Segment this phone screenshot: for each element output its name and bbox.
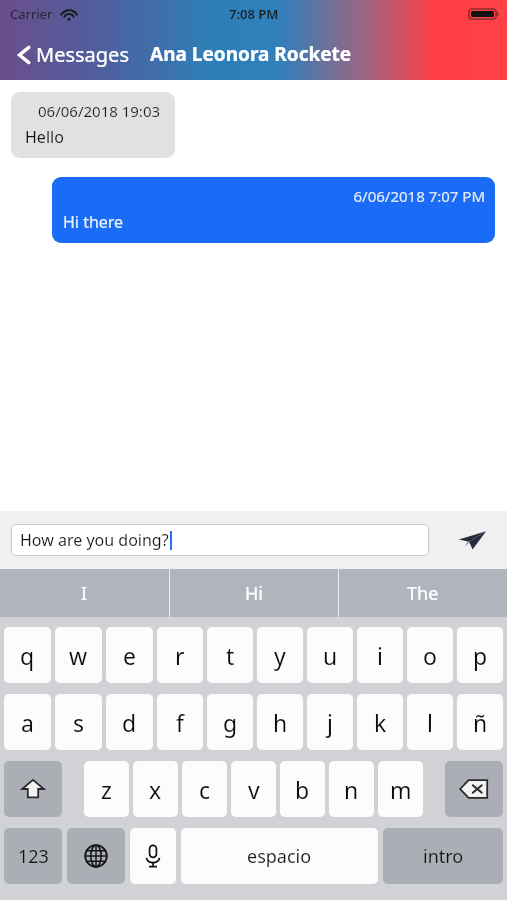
button[interactable]: i	[357, 627, 403, 683]
staticText: e	[123, 640, 136, 671]
button[interactable]: e	[106, 627, 153, 683]
staticText: q	[20, 640, 35, 671]
staticText: Hi there	[63, 211, 124, 233]
staticText: o	[423, 640, 437, 671]
button[interactable]: g	[207, 694, 253, 750]
button[interactable]: a	[4, 694, 51, 750]
button[interactable]: z	[84, 761, 129, 817]
button[interactable]: Shift	[4, 761, 62, 817]
button[interactable]: d	[106, 694, 153, 750]
button[interactable]: Hi	[170, 569, 338, 617]
button[interactable]: r	[157, 627, 203, 683]
staticText: f	[176, 707, 184, 738]
staticText: i	[377, 640, 383, 671]
staticText: c	[199, 774, 211, 805]
staticText: The	[407, 581, 439, 606]
staticText: b	[295, 774, 310, 805]
staticText: intro	[423, 844, 464, 869]
staticText: y	[274, 640, 286, 671]
button[interactable]: Backspace	[445, 761, 503, 817]
staticText: g	[223, 707, 238, 738]
staticText: ñ	[473, 707, 488, 738]
staticText: x	[149, 774, 162, 805]
button[interactable]: How are you doing?	[11, 524, 429, 556]
button[interactable]: ñ	[457, 694, 503, 750]
staticText: a	[21, 707, 34, 738]
staticText: Hi	[245, 581, 263, 606]
staticText: z	[101, 774, 112, 805]
button[interactable]: x	[133, 761, 178, 817]
button[interactable]: h	[257, 694, 303, 750]
staticText: t	[226, 640, 235, 671]
button[interactable]: q	[4, 627, 51, 683]
staticText: 7:08 PM	[229, 5, 279, 23]
button[interactable]: 123	[4, 828, 62, 884]
button[interactable]: The	[339, 569, 507, 617]
button[interactable]: 6/06/2018 7:07 PM	[52, 177, 495, 243]
staticText: u	[323, 640, 338, 671]
staticText: d	[122, 707, 137, 738]
button[interactable]: s	[55, 694, 102, 750]
button[interactable]: n	[329, 761, 374, 817]
staticText: Ana Leonora Rockete	[150, 41, 352, 67]
staticText: k	[374, 707, 387, 738]
button[interactable]: Messages	[12, 37, 133, 72]
staticText: l	[427, 707, 433, 738]
staticText: n	[344, 774, 359, 805]
button[interactable]: j	[307, 694, 353, 750]
button[interactable]: espacio	[181, 828, 378, 884]
button[interactable]: o	[407, 627, 453, 683]
staticText: m	[390, 774, 412, 805]
staticText: p	[473, 640, 488, 671]
button[interactable]: b	[280, 761, 325, 817]
button[interactable]: k	[357, 694, 403, 750]
button[interactable]: p	[457, 627, 503, 683]
button[interactable]: Voice input	[130, 828, 176, 884]
button[interactable]: y	[257, 627, 303, 683]
staticText: I	[81, 581, 88, 606]
staticText: 123	[18, 844, 49, 869]
staticText: v	[248, 774, 260, 805]
staticText: Messages	[36, 41, 129, 68]
staticText: Carrier	[10, 5, 53, 23]
staticText: espacio	[247, 844, 312, 869]
button[interactable]: intro	[383, 828, 503, 884]
button[interactable]: w	[55, 627, 102, 683]
button[interactable]: c	[182, 761, 227, 817]
button[interactable]: f	[157, 694, 203, 750]
button[interactable]: Send message	[449, 517, 495, 563]
staticText: h	[273, 707, 288, 738]
staticText: s	[73, 707, 85, 738]
staticText: w	[69, 640, 88, 671]
button[interactable]: l	[407, 694, 453, 750]
button[interactable]: 06/06/2018 19:03	[11, 92, 175, 158]
button[interactable]: t	[207, 627, 253, 683]
button[interactable]: I	[0, 569, 169, 617]
staticText: 6/06/2018 7:07 PM	[63, 186, 485, 206]
staticText: How are you doing?	[20, 529, 169, 551]
button[interactable]: u	[307, 627, 353, 683]
button[interactable]: m	[378, 761, 423, 817]
staticText: j	[327, 707, 333, 738]
staticText: 06/06/2018 19:03	[38, 101, 161, 121]
button[interactable]: v	[231, 761, 276, 817]
button[interactable]: Change keyboard language	[67, 828, 125, 884]
staticText: r	[175, 640, 185, 671]
staticText: Hello	[25, 126, 64, 148]
